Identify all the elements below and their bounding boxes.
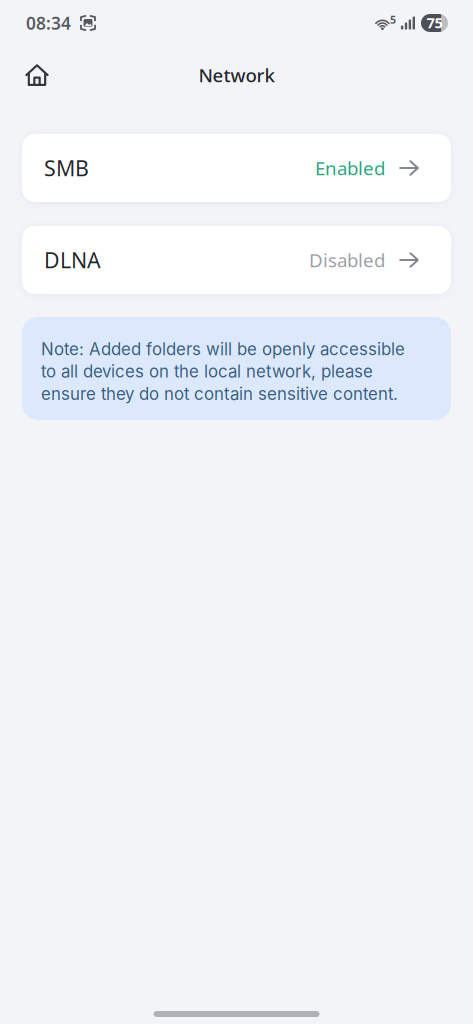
- staticText: 5: [390, 12, 396, 27]
- staticText: 08:34: [26, 11, 71, 34]
- staticText: SMB: [44, 154, 89, 182]
- button[interactable]: DLNA: [22, 226, 451, 294]
- staticText: Disabled: [309, 248, 385, 272]
- button[interactable]: Home: [15, 50, 59, 94]
- button[interactable]: SMB: [22, 134, 451, 202]
- staticText: Note: Added folders will be openly acces…: [41, 339, 405, 404]
- staticText: 75: [426, 13, 442, 32]
- staticText: Network: [198, 63, 274, 87]
- staticText: DLNA: [44, 246, 101, 274]
- staticText: Enabled: [315, 156, 385, 180]
